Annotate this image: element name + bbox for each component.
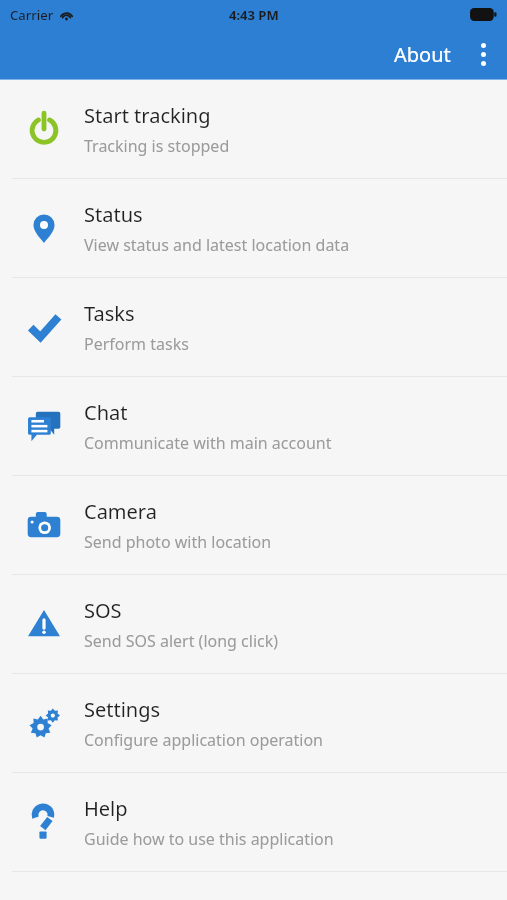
staticText: Send photo with location bbox=[84, 531, 272, 553]
button[interactable]: Settings bbox=[0, 674, 507, 772]
button[interactable]: Chat bbox=[0, 377, 507, 475]
staticText: Configure application operation bbox=[84, 729, 323, 751]
staticText: 4:43 PM bbox=[229, 6, 279, 24]
button[interactable]: Start tracking bbox=[0, 80, 507, 178]
staticText: Guide how to use this application bbox=[84, 828, 334, 850]
button[interactable]: Tasks bbox=[0, 278, 507, 376]
staticText: Settings bbox=[84, 696, 161, 723]
button[interactable]: Help bbox=[0, 773, 507, 871]
staticText: View status and latest location data bbox=[84, 234, 350, 256]
staticText: SOS bbox=[84, 597, 122, 624]
staticText: Status bbox=[84, 201, 143, 228]
staticText: Chat bbox=[84, 399, 128, 426]
staticText: Start tracking bbox=[84, 102, 211, 129]
staticText: Send SOS alert (long click) bbox=[84, 630, 279, 652]
button[interactable]: Status bbox=[0, 179, 507, 277]
staticText: Communicate with main account bbox=[84, 432, 332, 454]
staticText: Carrier bbox=[10, 6, 54, 24]
button[interactable]: About bbox=[384, 33, 461, 76]
staticText: About bbox=[394, 41, 451, 68]
staticText: Camera bbox=[84, 498, 157, 525]
staticText: Tracking is stopped bbox=[84, 135, 230, 157]
staticText: Help bbox=[84, 795, 128, 822]
staticText: Perform tasks bbox=[84, 333, 189, 355]
button[interactable]: SOS bbox=[0, 575, 507, 673]
button[interactable]: Camera bbox=[0, 476, 507, 574]
button[interactable]: More options bbox=[461, 32, 505, 76]
staticText: Tasks bbox=[84, 300, 135, 327]
